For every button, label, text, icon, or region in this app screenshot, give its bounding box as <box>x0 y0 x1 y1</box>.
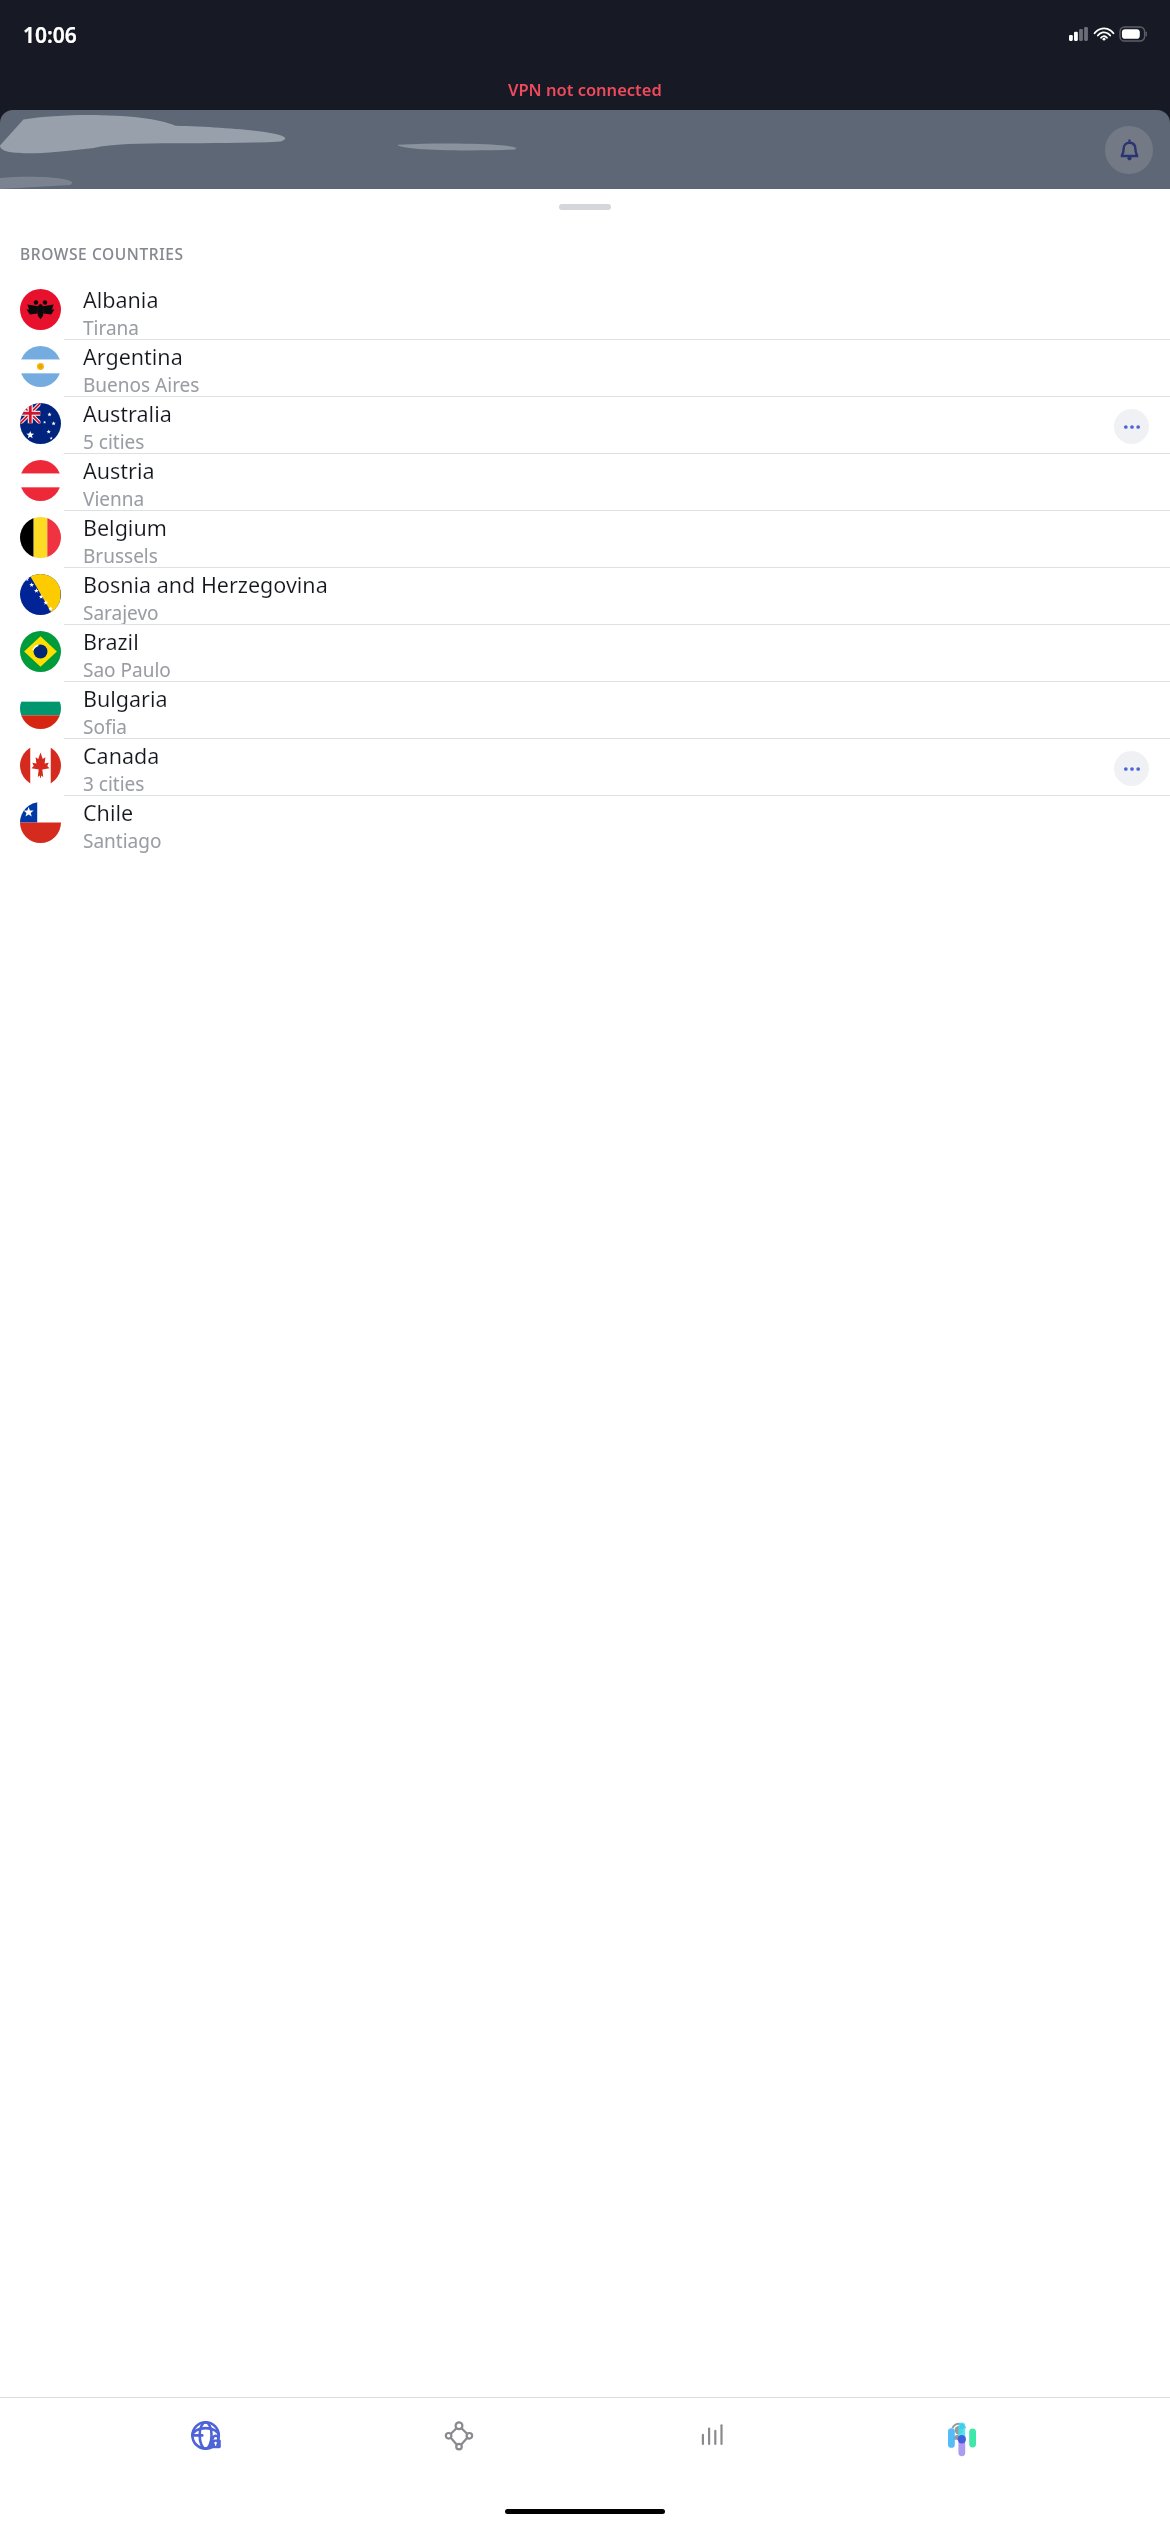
staticText: Chile <box>83 798 134 827</box>
button[interactable]: Canada <box>0 739 1170 796</box>
staticText: Austria <box>83 456 155 485</box>
button[interactable]: Profile <box>918 2397 1006 2498</box>
staticText: 3 cities <box>83 771 145 796</box>
staticText: Tirana <box>83 315 139 340</box>
staticText: 10:06 <box>23 21 77 50</box>
staticText: Buenos Aires <box>83 372 200 397</box>
button[interactable]: Albania <box>0 283 1170 340</box>
staticText: Brazil <box>83 627 139 656</box>
staticText: Brussels <box>83 543 158 568</box>
staticText: Canada <box>83 741 160 770</box>
button[interactable]: Chile <box>0 796 1170 853</box>
button[interactable]: Notifications <box>1105 126 1153 174</box>
staticText: Bulgaria <box>83 684 168 713</box>
button[interactable]: Mesh network <box>415 2397 503 2498</box>
staticText: Sofia <box>83 714 128 739</box>
staticText: VPN not connected <box>508 78 662 100</box>
button[interactable]: VPN locations <box>164 2397 252 2498</box>
staticText: Sarajevo <box>83 600 159 625</box>
staticText: Sao Paulo <box>83 657 171 682</box>
staticText: Belgium <box>83 513 167 542</box>
button[interactable]: Belgium <box>0 511 1170 568</box>
button[interactable]: Bulgaria <box>0 682 1170 739</box>
staticText: Argentina <box>83 342 183 371</box>
staticText: Australia <box>83 399 172 428</box>
staticText: BROWSE COUNTRIES <box>20 243 184 264</box>
button[interactable]: Austria <box>0 454 1170 511</box>
button[interactable]: More options <box>1114 751 1149 786</box>
button[interactable]: Australia <box>0 397 1170 454</box>
button[interactable]: Statistics <box>667 2397 755 2498</box>
button[interactable]: Argentina <box>0 340 1170 397</box>
staticText: Vienna <box>83 486 145 511</box>
staticText: 5 cities <box>83 429 145 454</box>
button[interactable]: Bosnia and Herzegovina <box>0 568 1170 625</box>
button[interactable]: Brazil <box>0 625 1170 682</box>
staticText: Albania <box>83 285 159 314</box>
staticText: Santiago <box>83 828 162 853</box>
staticText: Bosnia and Herzegovina <box>83 570 328 599</box>
button[interactable]: More options <box>1114 409 1149 444</box>
